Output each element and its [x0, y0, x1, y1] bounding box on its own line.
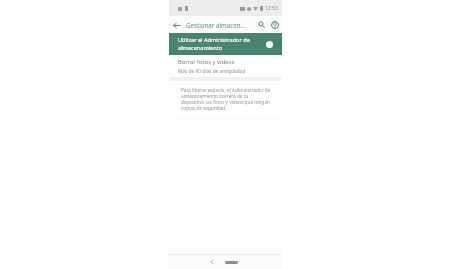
staticText: Para liberar espacio, el Administrador d…	[181, 87, 272, 111]
button[interactable]: Utilizar el Administrador de almacenamie…	[169, 33, 282, 55]
staticText: Borrar fotos y vídeos	[178, 58, 235, 66]
button[interactable]: Search	[255, 18, 268, 31]
button[interactable]: Back	[169, 18, 183, 32]
staticText: Más de 90 días de antigüedad	[178, 68, 246, 75]
staticText: 12:53	[265, 5, 278, 12]
button[interactable]: Back	[207, 257, 217, 267]
button[interactable]: Home	[225, 261, 238, 264]
button[interactable]: Borrar fotos y vídeos	[169, 55, 282, 77]
button[interactable]: Help	[268, 18, 281, 31]
staticText: Gestionar almacen…	[186, 21, 246, 29]
staticText: Utilizar el Administrador de almacenamie…	[178, 36, 255, 52]
